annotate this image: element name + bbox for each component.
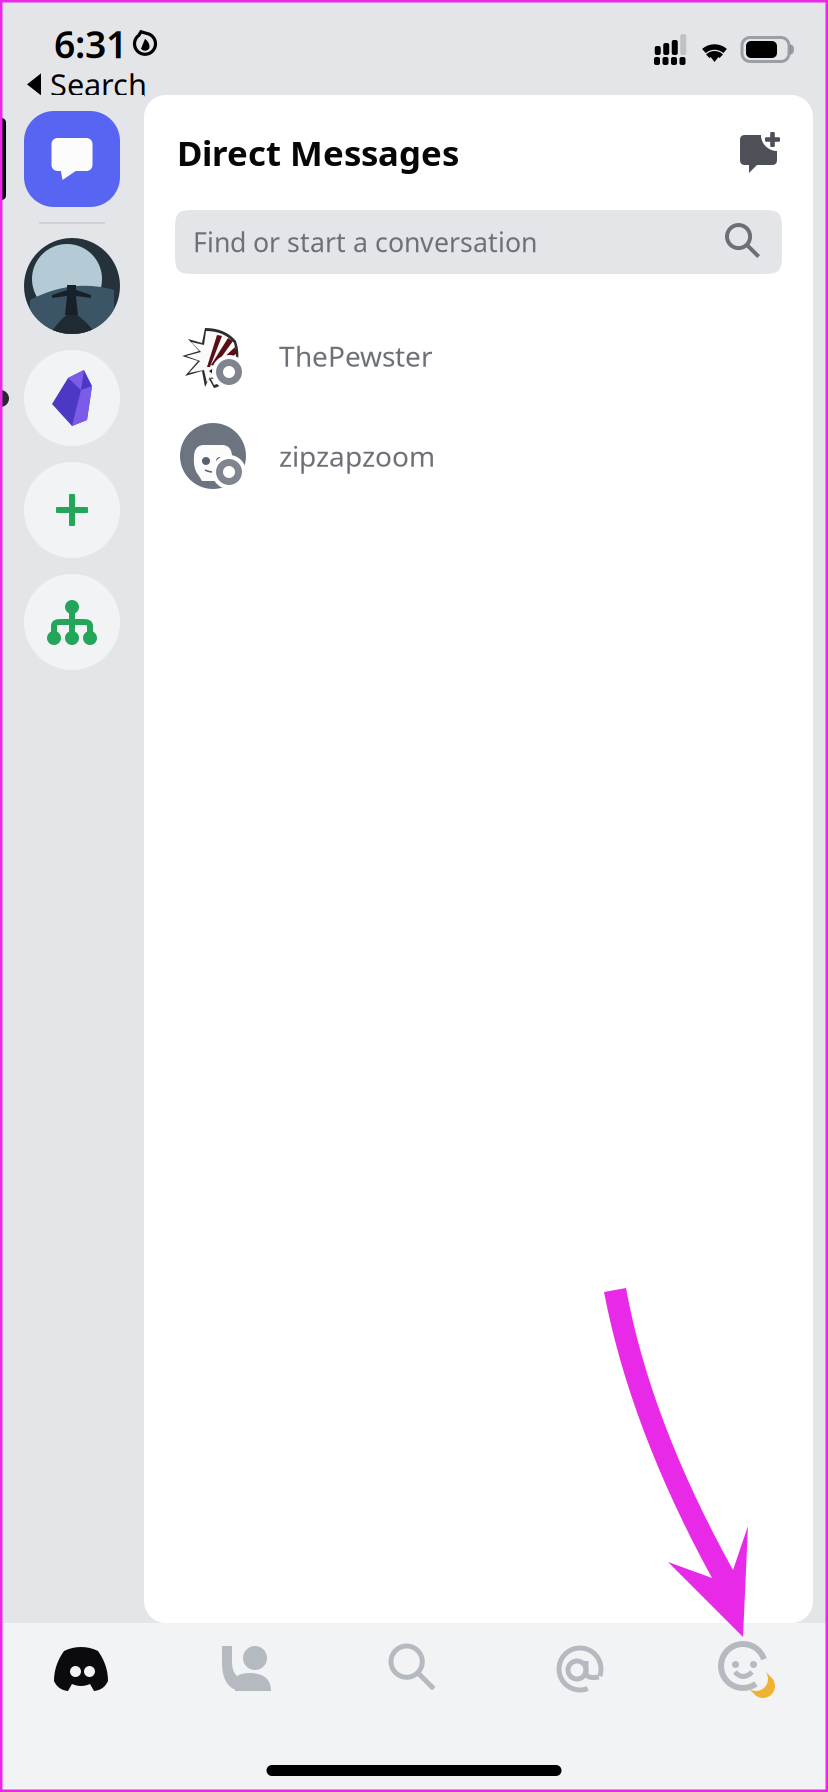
button[interactable]: Mentions [497,1623,663,1715]
staticText: ThePewster [279,337,433,375]
button[interactable]: Search [331,1623,497,1715]
button[interactable]: Find or start a conversation [175,210,782,274]
staticText: 6:31 [54,19,127,69]
button[interactable]: Direct Messages [24,111,120,207]
staticText: Find or start a conversation [193,224,537,260]
button[interactable]: zipzapzoom [144,406,813,506]
button[interactable]: Add a Server [24,462,120,558]
staticText: Direct Messages [177,129,459,175]
button[interactable]: Servers [0,1623,165,1715]
button[interactable]: Explore Servers [24,574,120,670]
staticText: zipzapzoom [279,437,435,475]
button[interactable]: Server [24,238,120,334]
staticText: Search [50,64,147,105]
button[interactable]: You [663,1623,828,1715]
button[interactable]: Friends [165,1623,331,1715]
button[interactable]: Server [24,350,120,446]
button[interactable]: ThePewster [144,306,813,406]
button[interactable]: New Message [740,132,780,173]
